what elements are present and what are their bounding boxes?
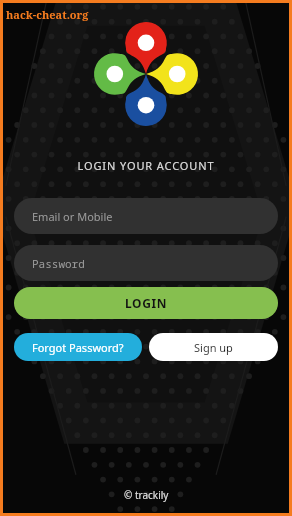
- staticText: Forgot Password?: [32, 340, 124, 355]
- staticText: hack-cheat.org: [6, 7, 89, 22]
- button[interactable]: Forgot Password?: [14, 333, 142, 361]
- button[interactable]: LOGIN: [14, 287, 278, 319]
- button[interactable]: Email or Mobile: [14, 198, 278, 234]
- staticText: Sign up: [194, 340, 233, 355]
- staticText: LOGIN: [125, 295, 168, 311]
- button[interactable]: Password: [14, 245, 278, 281]
- button[interactable]: Sign up: [149, 333, 278, 361]
- staticText: Email or Mobile: [32, 209, 113, 224]
- staticText: LOGIN YOUR ACCOUNT: [77, 158, 215, 173]
- staticText: Password: [32, 256, 85, 271]
- staticText: © trackily: [124, 488, 169, 502]
